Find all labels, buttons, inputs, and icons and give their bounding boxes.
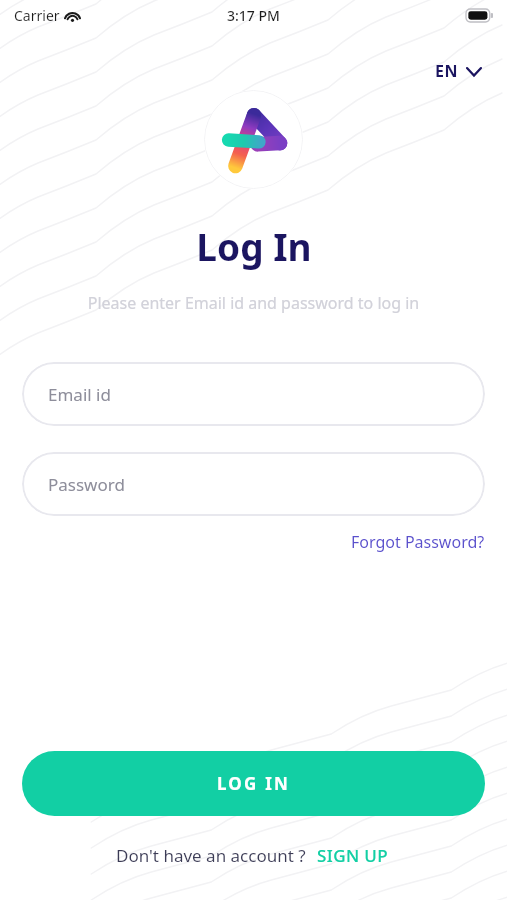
staticText: Forgot Password? bbox=[351, 531, 485, 553]
button[interactable]: Email id bbox=[22, 362, 485, 426]
staticText: Log In bbox=[196, 221, 312, 271]
button[interactable]: Forgot Password? bbox=[347, 528, 489, 556]
staticText: Don't have an account ? bbox=[116, 844, 306, 867]
staticText: LOG IN bbox=[217, 772, 290, 795]
button[interactable]: SIGN UP bbox=[314, 841, 392, 870]
button[interactable]: Password bbox=[22, 452, 485, 516]
staticText: Email id bbox=[48, 383, 111, 406]
button[interactable]: EN bbox=[431, 56, 485, 86]
staticText: Carrier bbox=[14, 6, 60, 25]
staticText: EN bbox=[435, 60, 458, 82]
staticText: 3:17 PM bbox=[227, 6, 280, 25]
button[interactable]: LOG IN bbox=[22, 751, 485, 816]
staticText: SIGN UP bbox=[317, 844, 389, 867]
staticText: Password bbox=[48, 473, 125, 496]
staticText: Please enter Email id and password to lo… bbox=[24, 292, 483, 314]
